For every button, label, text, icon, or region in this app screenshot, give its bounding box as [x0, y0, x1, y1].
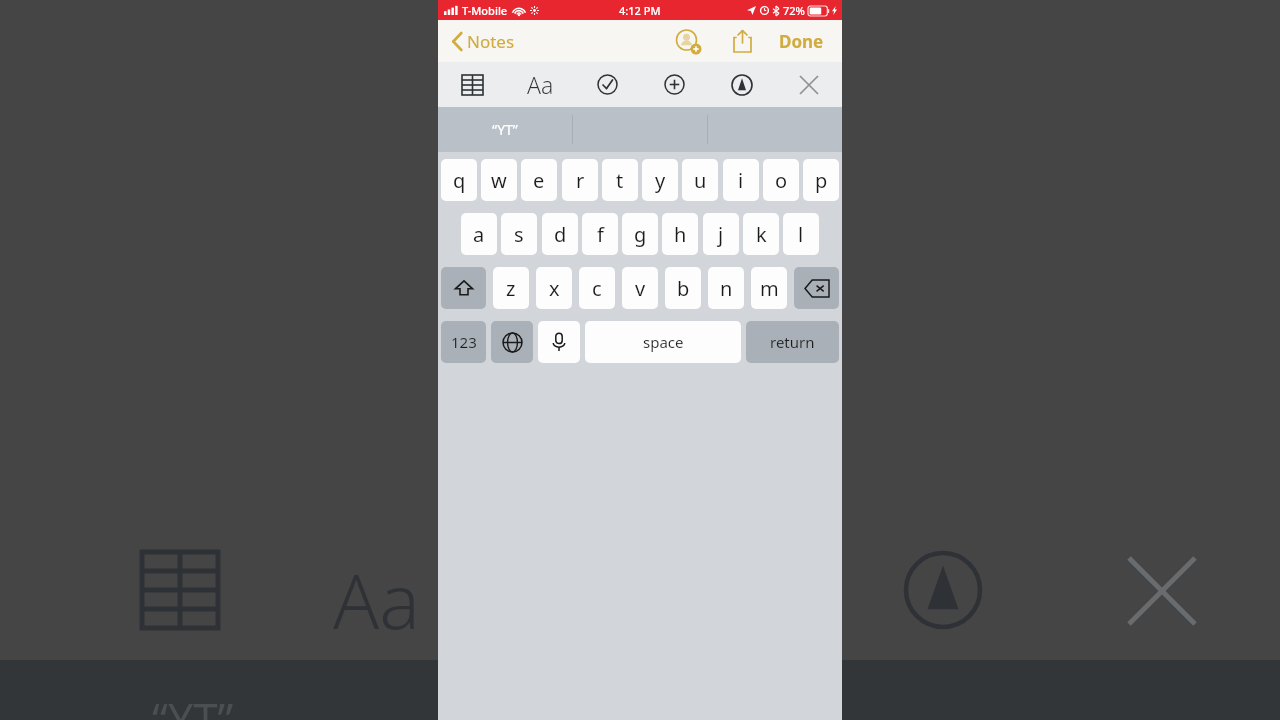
staticText: m: [760, 275, 779, 302]
button[interactable]: x: [536, 267, 572, 309]
staticText: return: [770, 332, 815, 352]
button[interactable]: Aa: [506, 62, 574, 107]
staticText: p: [815, 167, 828, 194]
button[interactable]: Add attachment: [641, 62, 708, 107]
staticText: c: [592, 275, 602, 302]
staticText: i: [738, 167, 744, 194]
staticText: Notes: [467, 30, 515, 53]
button[interactable]: i: [723, 159, 759, 201]
button[interactable]: Table: [438, 62, 506, 107]
button[interactable]: n: [708, 267, 744, 309]
staticText: s: [514, 221, 524, 248]
button[interactable]: Backspace: [794, 267, 839, 309]
staticText: e: [533, 167, 545, 194]
button[interactable]: s: [501, 213, 537, 255]
staticText: j: [718, 221, 724, 248]
staticText: a: [473, 221, 485, 248]
staticText: 4:12 PM: [619, 3, 661, 18]
staticText: o: [775, 167, 788, 194]
staticText: Aa: [527, 69, 554, 100]
button[interactable]: Dictation: [538, 321, 580, 363]
staticText: “YT”: [152, 688, 234, 720]
button[interactable]: l: [783, 213, 819, 255]
staticText: k: [756, 221, 767, 248]
button[interactable]: space: [585, 321, 741, 363]
staticText: d: [554, 221, 567, 248]
staticText: b: [677, 275, 690, 302]
staticText: 123: [451, 332, 477, 352]
staticText: q: [453, 167, 466, 194]
staticText: g: [634, 221, 647, 248]
button[interactable]: k: [743, 213, 779, 255]
button[interactable]: f: [582, 213, 618, 255]
button[interactable]: r: [562, 159, 598, 201]
staticText: h: [674, 221, 687, 248]
staticText: n: [720, 275, 733, 302]
staticText: v: [635, 275, 646, 302]
staticText: y: [655, 167, 666, 194]
button[interactable]: Add people: [673, 26, 703, 56]
button[interactable]: Markup: [708, 62, 775, 107]
button[interactable]: g: [622, 213, 658, 255]
button[interactable]: c: [579, 267, 615, 309]
button[interactable]: v: [622, 267, 658, 309]
button[interactable]: y: [642, 159, 678, 201]
staticText: z: [506, 275, 516, 302]
button[interactable]: p: [803, 159, 839, 201]
staticText: “YT”: [492, 120, 518, 139]
staticText: t: [616, 167, 624, 194]
button[interactable]: j: [703, 213, 739, 255]
staticText: x: [549, 275, 560, 302]
button[interactable]: e: [521, 159, 557, 201]
staticText: T-Mobile: [462, 3, 508, 18]
staticText: Aa: [333, 548, 420, 652]
staticText: r: [576, 167, 585, 194]
button[interactable]: 123: [441, 321, 486, 363]
staticText: l: [798, 221, 804, 248]
button[interactable]: o: [763, 159, 799, 201]
button[interactable]: w: [481, 159, 517, 201]
button[interactable]: “YT”: [438, 107, 572, 152]
button[interactable]: return: [746, 321, 839, 363]
staticText: space: [643, 332, 684, 352]
button[interactable]: Close: [775, 62, 842, 107]
button[interactable]: z: [493, 267, 529, 309]
staticText: u: [694, 167, 707, 194]
button[interactable]: Share: [727, 26, 757, 56]
button[interactable]: Notes: [452, 30, 521, 53]
button[interactable]: Shift: [441, 267, 486, 309]
button[interactable]: a: [461, 213, 497, 255]
staticText: w: [491, 167, 507, 194]
staticText: 72%: [783, 3, 805, 18]
staticText: Done: [779, 30, 824, 53]
button[interactable]: u: [682, 159, 718, 201]
button[interactable]: Done: [777, 28, 826, 55]
button[interactable]: q: [441, 159, 477, 201]
button[interactable]: b: [665, 267, 701, 309]
button[interactable]: m: [751, 267, 787, 309]
button[interactable]: Switch keyboard: [491, 321, 533, 363]
button[interactable]: Checklist: [574, 62, 641, 107]
button[interactable]: d: [542, 213, 578, 255]
button[interactable]: h: [662, 213, 698, 255]
button[interactable]: t: [602, 159, 638, 201]
staticText: f: [597, 221, 604, 248]
